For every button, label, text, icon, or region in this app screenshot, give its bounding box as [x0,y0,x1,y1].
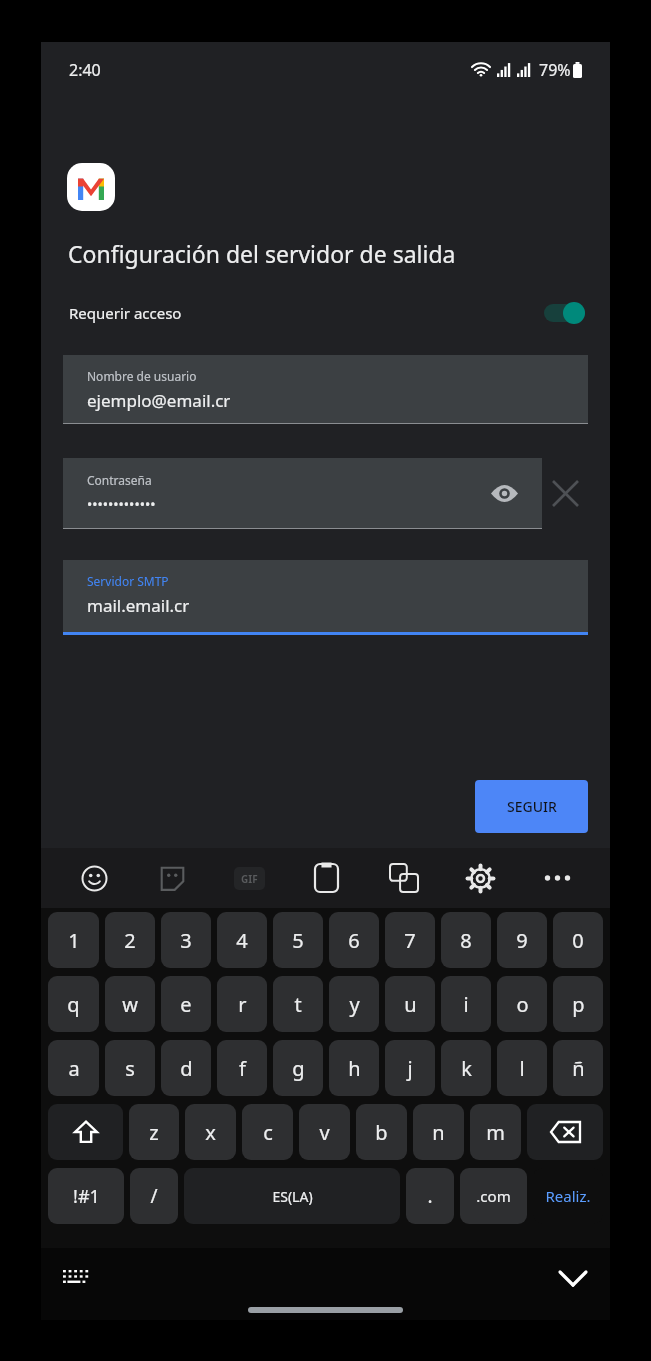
button[interactable]: x [185,1104,236,1160]
button[interactable]: k [441,1040,491,1096]
button[interactable]: Ajustes [442,848,519,908]
button[interactable]: g [273,1040,323,1096]
staticText: l [519,1055,525,1082]
button[interactable]: i [441,976,491,1032]
button[interactable]: 0 [553,912,603,968]
button[interactable]: r [217,976,267,1032]
staticText: h [348,1055,361,1082]
button[interactable]: j [385,1040,435,1096]
button[interactable]: a [48,1040,99,1096]
staticText: t [294,991,302,1018]
button[interactable]: Mostrar contraseña [486,475,522,511]
staticText: s [125,1055,135,1082]
button[interactable]: !#1 [48,1168,124,1224]
staticText: g [292,1055,305,1082]
staticText: 1 [68,927,80,954]
staticText: p [572,991,585,1018]
button[interactable]: ñ [553,1040,603,1096]
button[interactable]: 5 [273,912,323,968]
staticText: 4 [236,927,248,954]
staticText: ñ [572,1055,585,1082]
button[interactable]: t [273,976,323,1032]
button[interactable]: 9 [497,912,547,968]
staticText: q [67,991,80,1018]
button[interactable]: . [406,1168,454,1224]
staticText: y [349,991,360,1018]
button[interactable]: 6 [329,912,379,968]
staticText: 6 [348,927,360,954]
button[interactable]: w [105,976,155,1032]
button[interactable]: Mayúsculas [48,1104,123,1160]
button[interactable]: z [129,1104,179,1160]
button[interactable]: f [217,1040,267,1096]
staticText: 0 [572,927,584,954]
button[interactable]: o [497,976,547,1032]
staticText: i [463,991,469,1018]
button[interactable]: 2 [105,912,155,968]
staticText: .com [476,1186,511,1206]
staticText: 8 [460,927,472,954]
button[interactable]: Más [519,848,596,908]
staticText: r [238,991,247,1018]
staticText: 79% [539,59,571,81]
button[interactable]: q [48,976,99,1032]
staticText: o [516,991,529,1018]
button[interactable]: Emoji [55,848,133,908]
button[interactable]: p [553,976,603,1032]
staticText: GIF [241,872,258,886]
staticText: z [149,1119,159,1146]
staticText: 9 [516,927,528,954]
button[interactable]: 7 [385,912,435,968]
button[interactable]: Stickers [133,848,211,908]
button[interactable]: v [299,1104,350,1160]
button[interactable]: e [161,976,211,1032]
staticText: c [263,1119,273,1146]
button[interactable]: n [413,1104,464,1160]
button[interactable]: m [470,1104,521,1160]
button[interactable]: 1 [48,912,99,968]
button[interactable]: Realiz. [533,1168,603,1224]
button[interactable]: c [242,1104,293,1160]
button[interactable]: Cambiar teclado [53,1255,99,1301]
button[interactable]: u [385,976,435,1032]
staticText: Realiz. [545,1186,591,1206]
button[interactable]: Contraseña [63,458,542,529]
button[interactable]: SEGUIR [475,780,588,833]
button[interactable]: s [105,1040,155,1096]
staticText: b [375,1119,388,1146]
staticText: n [432,1119,445,1146]
staticText: f [239,1055,246,1082]
button[interactable]: l [497,1040,547,1096]
staticText: w [122,991,138,1018]
button[interactable]: 3 [161,912,211,968]
button[interactable]: / [130,1168,178,1224]
staticText: . [427,1183,433,1209]
staticText: 7 [404,927,416,954]
staticText: u [404,991,417,1018]
staticText: / [150,1183,158,1209]
button[interactable]: Borrar [527,1104,603,1160]
staticText: ejemplo@email.cr [87,389,231,412]
button[interactable]: h [329,1040,379,1096]
button[interactable]: GIF [211,848,288,908]
button[interactable]: Servidor SMTP [63,560,588,635]
staticText: m [486,1119,505,1146]
button[interactable]: Traducir [365,848,442,908]
button[interactable]: Portapapeles [288,848,365,908]
button[interactable]: 4 [217,912,267,968]
button[interactable]: 8 [441,912,491,968]
button[interactable]: ES(LA) [184,1168,400,1224]
staticText: k [461,1055,472,1082]
staticText: Servidor SMTP [87,573,169,589]
button[interactable]: .com [460,1168,527,1224]
button[interactable]: Ocultar teclado [548,1253,598,1303]
button[interactable]: b [356,1104,407,1160]
button[interactable]: Borrar [542,458,588,528]
button[interactable]: Requerir acceso [41,289,610,337]
staticText: d [180,1055,193,1082]
staticText: v [319,1119,330,1146]
button[interactable]: Nombre de usuario [63,355,588,424]
button[interactable]: d [161,1040,211,1096]
staticText: 2:40 [69,59,101,81]
button[interactable]: y [329,976,379,1032]
